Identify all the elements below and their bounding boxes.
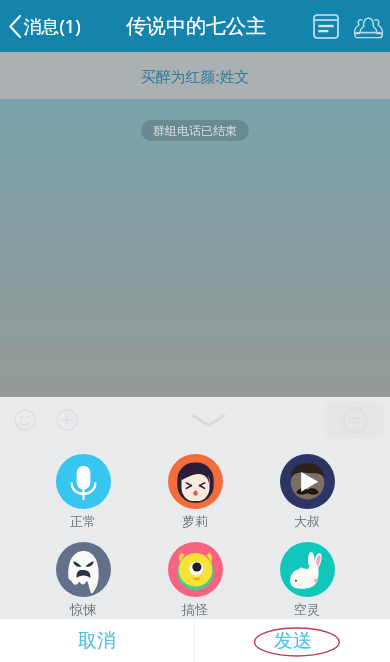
- staticText: 传说中的七公主: [126, 14, 266, 39]
- staticText: 空灵: [294, 601, 320, 617]
- button[interactable]: 空灵: [251, 542, 363, 617]
- button[interactable]: 萝莉: [139, 454, 251, 529]
- button[interactable]: 正常: [27, 454, 139, 529]
- staticText: 搞怪: [182, 601, 208, 617]
- staticText: 惊悚: [70, 601, 96, 617]
- button[interactable]: Messages: [306, 6, 346, 46]
- staticText: 正常: [70, 513, 96, 529]
- staticText: 大叔: [294, 513, 320, 529]
- staticText: 消息(1): [23, 14, 81, 39]
- button[interactable]: Group members: [346, 4, 390, 48]
- button[interactable]: Emoji: [8, 403, 42, 437]
- button[interactable]: Collapse panel: [186, 405, 230, 435]
- button[interactable]: 取消: [0, 619, 194, 662]
- button[interactable]: Add: [50, 403, 84, 437]
- staticText: 取消: [78, 629, 116, 653]
- button[interactable]: 大叔: [251, 454, 363, 529]
- staticText: 买醉为红颜:姓文: [140, 66, 250, 86]
- staticText: 群组电话已结束: [153, 123, 237, 138]
- staticText: 萝莉: [182, 513, 208, 529]
- button[interactable]: 搞怪: [139, 542, 251, 617]
- button[interactable]: 发送: [195, 619, 390, 662]
- staticText: 发送: [274, 629, 312, 653]
- button[interactable]: 惊悚: [27, 542, 139, 617]
- button[interactable]: 消息(1): [0, 14, 87, 39]
